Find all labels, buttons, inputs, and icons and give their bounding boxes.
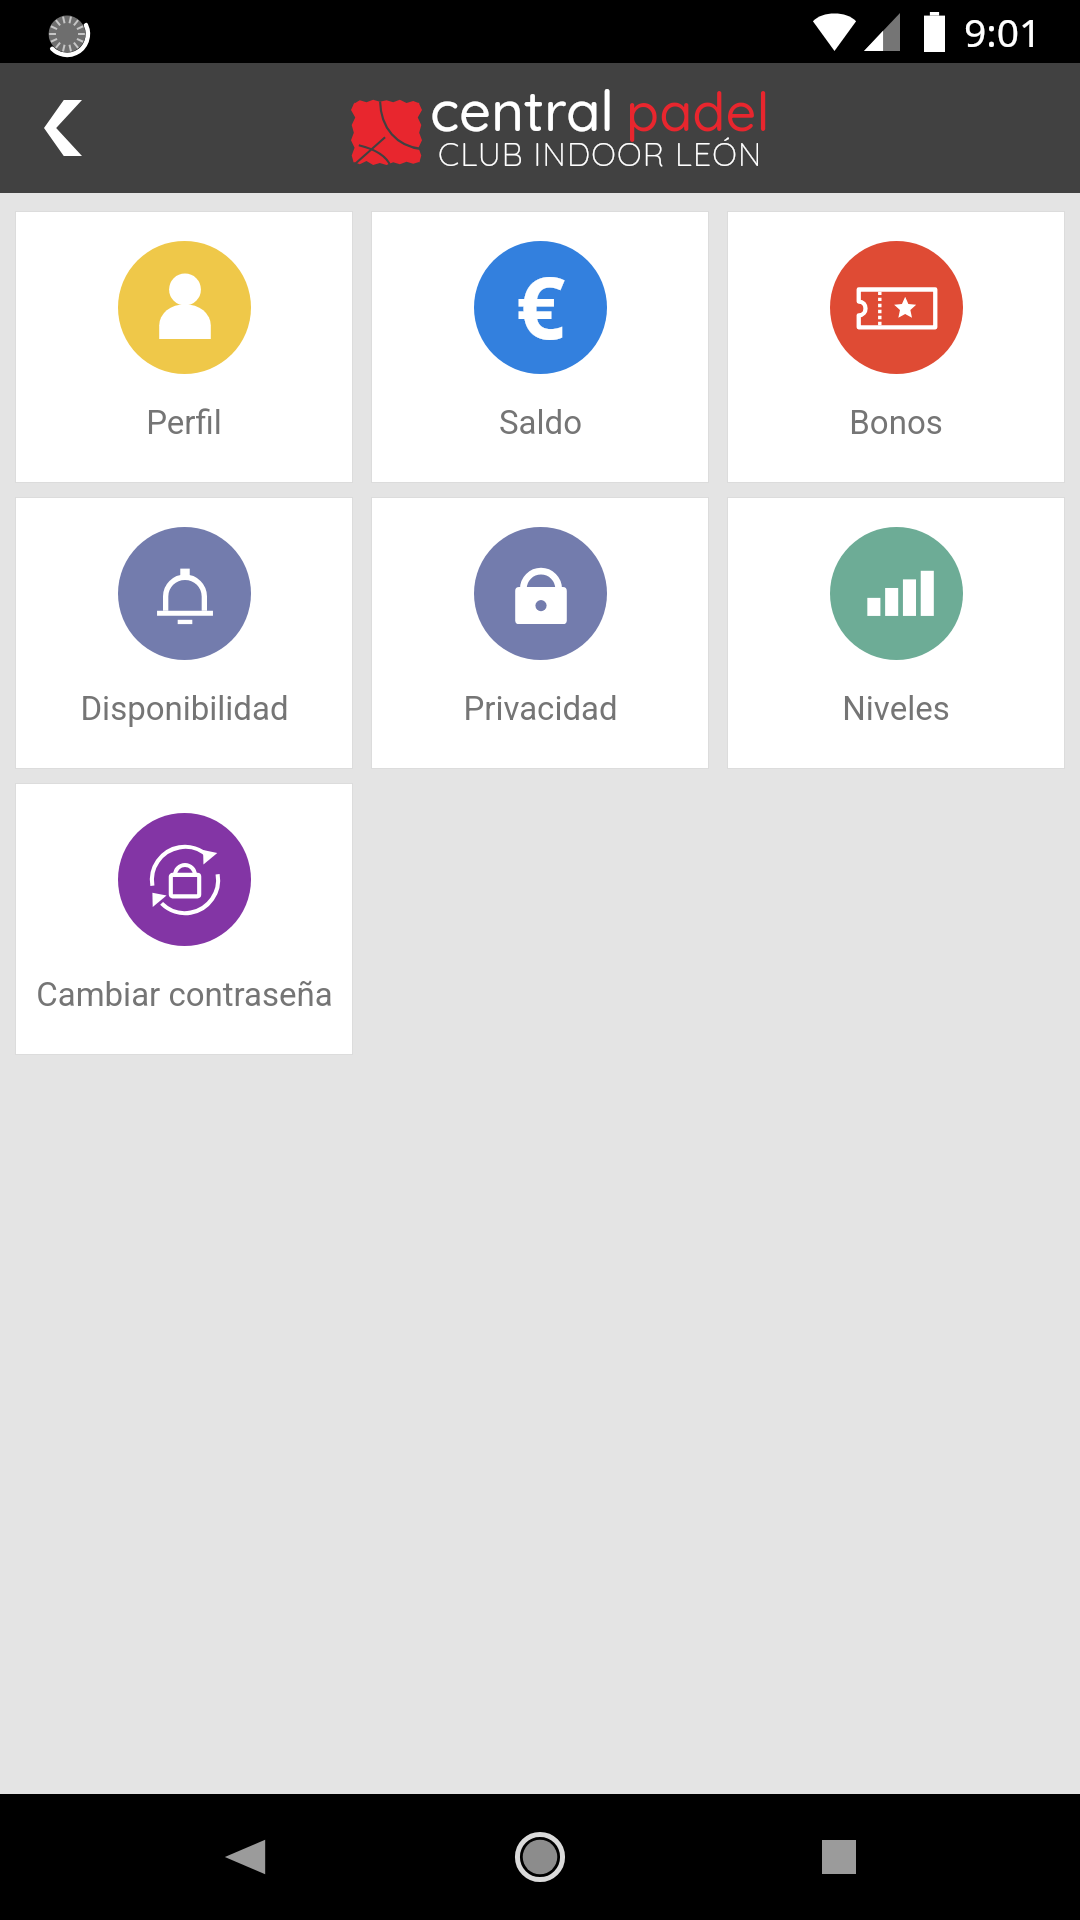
staticText: Cambiar contraseña [36, 975, 333, 1014]
staticText: Privacidad [463, 689, 618, 728]
button[interactable]: Disponibilidad [15, 497, 353, 769]
staticText: Saldo [499, 403, 582, 442]
button[interactable]: Niveles [727, 497, 1065, 769]
staticText: 9:01 [964, 5, 1042, 58]
button[interactable]: Privacidad [371, 497, 709, 769]
button[interactable]: Cambiar contraseña [15, 783, 353, 1055]
button[interactable]: Back [184, 1796, 306, 1918]
staticText: Bonos [849, 403, 943, 442]
button[interactable]: Back [0, 63, 126, 193]
staticText: € [516, 247, 566, 364]
staticText: Perfil [146, 403, 222, 442]
button[interactable]: € [371, 211, 709, 483]
staticText: CLUB INDOOR LEÓN [438, 134, 763, 174]
staticText: Niveles [842, 689, 950, 728]
staticText: padel [626, 77, 770, 145]
staticText: central [430, 75, 614, 145]
button[interactable]: Bonos [727, 211, 1065, 483]
button[interactable]: Home [479, 1796, 601, 1918]
button[interactable]: Perfil [15, 211, 353, 483]
button[interactable]: Recent apps [778, 1796, 900, 1918]
staticText: Disponibilidad [80, 689, 289, 728]
